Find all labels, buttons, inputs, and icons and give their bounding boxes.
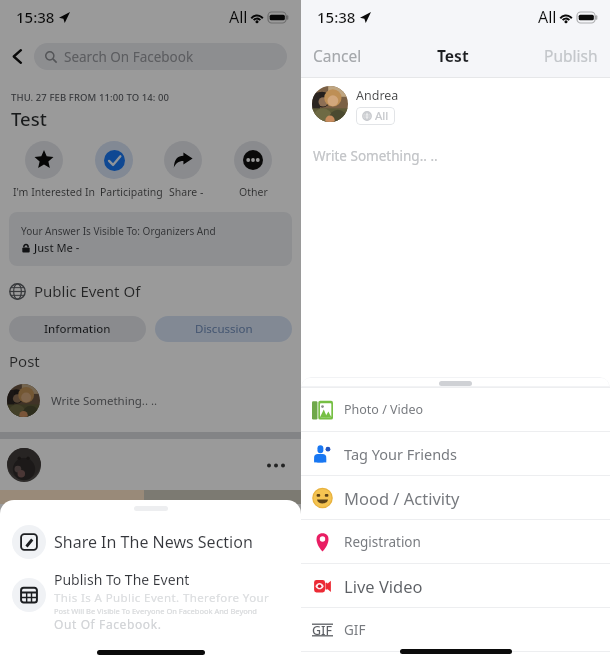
button[interactable]: Action: [164, 141, 202, 179]
button[interactable]: Action: [25, 141, 63, 179]
staticText: Public Event Of: [34, 281, 141, 301]
staticText: GIF: [344, 621, 366, 639]
staticText: Photo / Video: [344, 401, 424, 418]
staticText: Write Something.. ..: [51, 393, 158, 409]
staticText: Other: [239, 185, 268, 199]
staticText: Live Video: [344, 575, 423, 597]
staticText: Out Of Facebook.: [54, 616, 162, 632]
button[interactable]: Registration: [301, 520, 610, 564]
button[interactable]: Publish To The Event: [0, 570, 301, 632]
button[interactable]: Mood / Activity: [301, 476, 610, 520]
staticText: THU. 27 FEB FROM 11:00 TO 14: 00: [11, 91, 170, 104]
staticText: Registration: [344, 533, 421, 551]
staticText: All: [375, 108, 389, 124]
staticText: Cancel: [313, 45, 362, 66]
button[interactable]: All: [356, 107, 395, 125]
staticText: Search On Facebook: [64, 48, 194, 66]
staticText: GIF: [312, 622, 333, 639]
button[interactable]: Cancel: [301, 41, 370, 70]
staticText: 15:38: [317, 7, 356, 27]
button[interactable]: Publish: [536, 41, 610, 70]
staticText: Test: [11, 106, 47, 131]
staticText: Your Answer Is Visible To: Organizers An…: [21, 224, 216, 238]
button[interactable]: Back: [0, 34, 34, 78]
staticText: This Is A Public Event. Therefore Your: [54, 590, 270, 606]
staticText: I'm Interested In: [13, 185, 95, 199]
button[interactable]: Live Video: [301, 564, 610, 608]
staticText: Mood / Activity: [344, 487, 460, 509]
staticText: All: [229, 6, 248, 28]
button[interactable]: Photo / Video: [301, 388, 610, 432]
staticText: Participating: [100, 185, 163, 199]
button[interactable]: More options: [263, 452, 289, 478]
staticText: Test: [437, 45, 469, 66]
staticText: 15:38: [16, 7, 55, 27]
staticText: Just Me -: [34, 240, 80, 255]
staticText: Information: [44, 321, 111, 337]
button[interactable]: Tag Your Friends: [301, 432, 610, 476]
staticText: Write Something.. ..: [313, 147, 438, 165]
staticText: Discussion: [195, 321, 253, 337]
button[interactable]: Search On Facebook: [34, 43, 287, 70]
button[interactable]: GIF: [301, 608, 610, 652]
staticText: Publish: [544, 45, 598, 66]
staticText: Tag Your Friends: [344, 444, 457, 464]
staticText: Share -: [169, 185, 204, 199]
button[interactable]: Discussion: [155, 316, 292, 342]
button[interactable]: Your Answer Is Visible To: Organizers An…: [9, 212, 292, 266]
staticText: Post Will Be Visible To Everyone On Face…: [54, 606, 257, 616]
staticText: Share In The News Section: [54, 531, 253, 553]
button[interactable]: Action: [234, 141, 272, 179]
staticText: All: [538, 6, 557, 28]
staticText: Publish To The Event: [54, 570, 190, 589]
staticText: Post: [9, 351, 40, 371]
button[interactable]: Information: [9, 316, 146, 342]
staticText: Andrea: [356, 87, 399, 104]
button[interactable]: Action: [95, 141, 133, 179]
button[interactable]: Share In The News Section: [0, 514, 301, 570]
